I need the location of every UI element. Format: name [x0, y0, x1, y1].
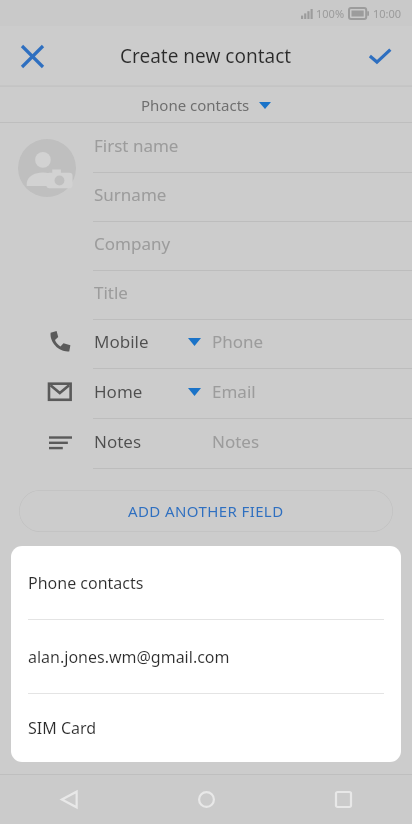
button[interactable]: Cancel — [12, 36, 52, 76]
staticText: Notes — [212, 430, 260, 453]
button[interactable]: Phone contacts — [141, 95, 271, 115]
staticText: Mobile — [94, 330, 149, 353]
button[interactable]: SIM Card — [11, 694, 401, 762]
button[interactable]: First name — [0, 124, 412, 173]
button[interactable]: Home — [0, 370, 412, 419]
staticText: Email — [212, 380, 256, 403]
staticText: Company — [94, 232, 171, 255]
button[interactable]: Back — [0, 774, 138, 824]
staticText: Title — [94, 281, 128, 304]
button[interactable]: alan.jones.wm@gmail.com — [11, 620, 401, 693]
staticText: Phone contacts — [28, 572, 144, 594]
staticText: SIM Card — [28, 717, 97, 739]
staticText: alan.jones.wm@gmail.com — [28, 646, 230, 668]
staticText: Surname — [94, 183, 167, 206]
button[interactable]: Mobile — [0, 320, 412, 369]
staticText: Notes — [94, 430, 142, 453]
staticText: ADD ANOTHER FIELD — [128, 501, 284, 521]
button[interactable]: Company — [0, 222, 412, 271]
button[interactable]: Title — [0, 271, 412, 320]
staticText: Create new contact — [120, 43, 292, 69]
staticText: Home — [94, 380, 143, 403]
staticText: First name — [94, 134, 179, 157]
button[interactable]: ADD ANOTHER FIELD — [19, 490, 393, 532]
staticText: 100% — [316, 6, 345, 21]
button[interactable]: Home — [138, 774, 275, 824]
button[interactable]: Surname — [0, 173, 412, 222]
button[interactable]: Notes — [0, 420, 412, 469]
staticText: 10:00 — [373, 6, 402, 21]
button[interactable]: Phone contacts — [11, 546, 401, 619]
staticText: Phone contacts — [141, 95, 250, 115]
staticText: Phone — [212, 330, 264, 353]
button[interactable]: Recent apps — [275, 774, 412, 824]
button[interactable]: Save — [360, 36, 400, 76]
